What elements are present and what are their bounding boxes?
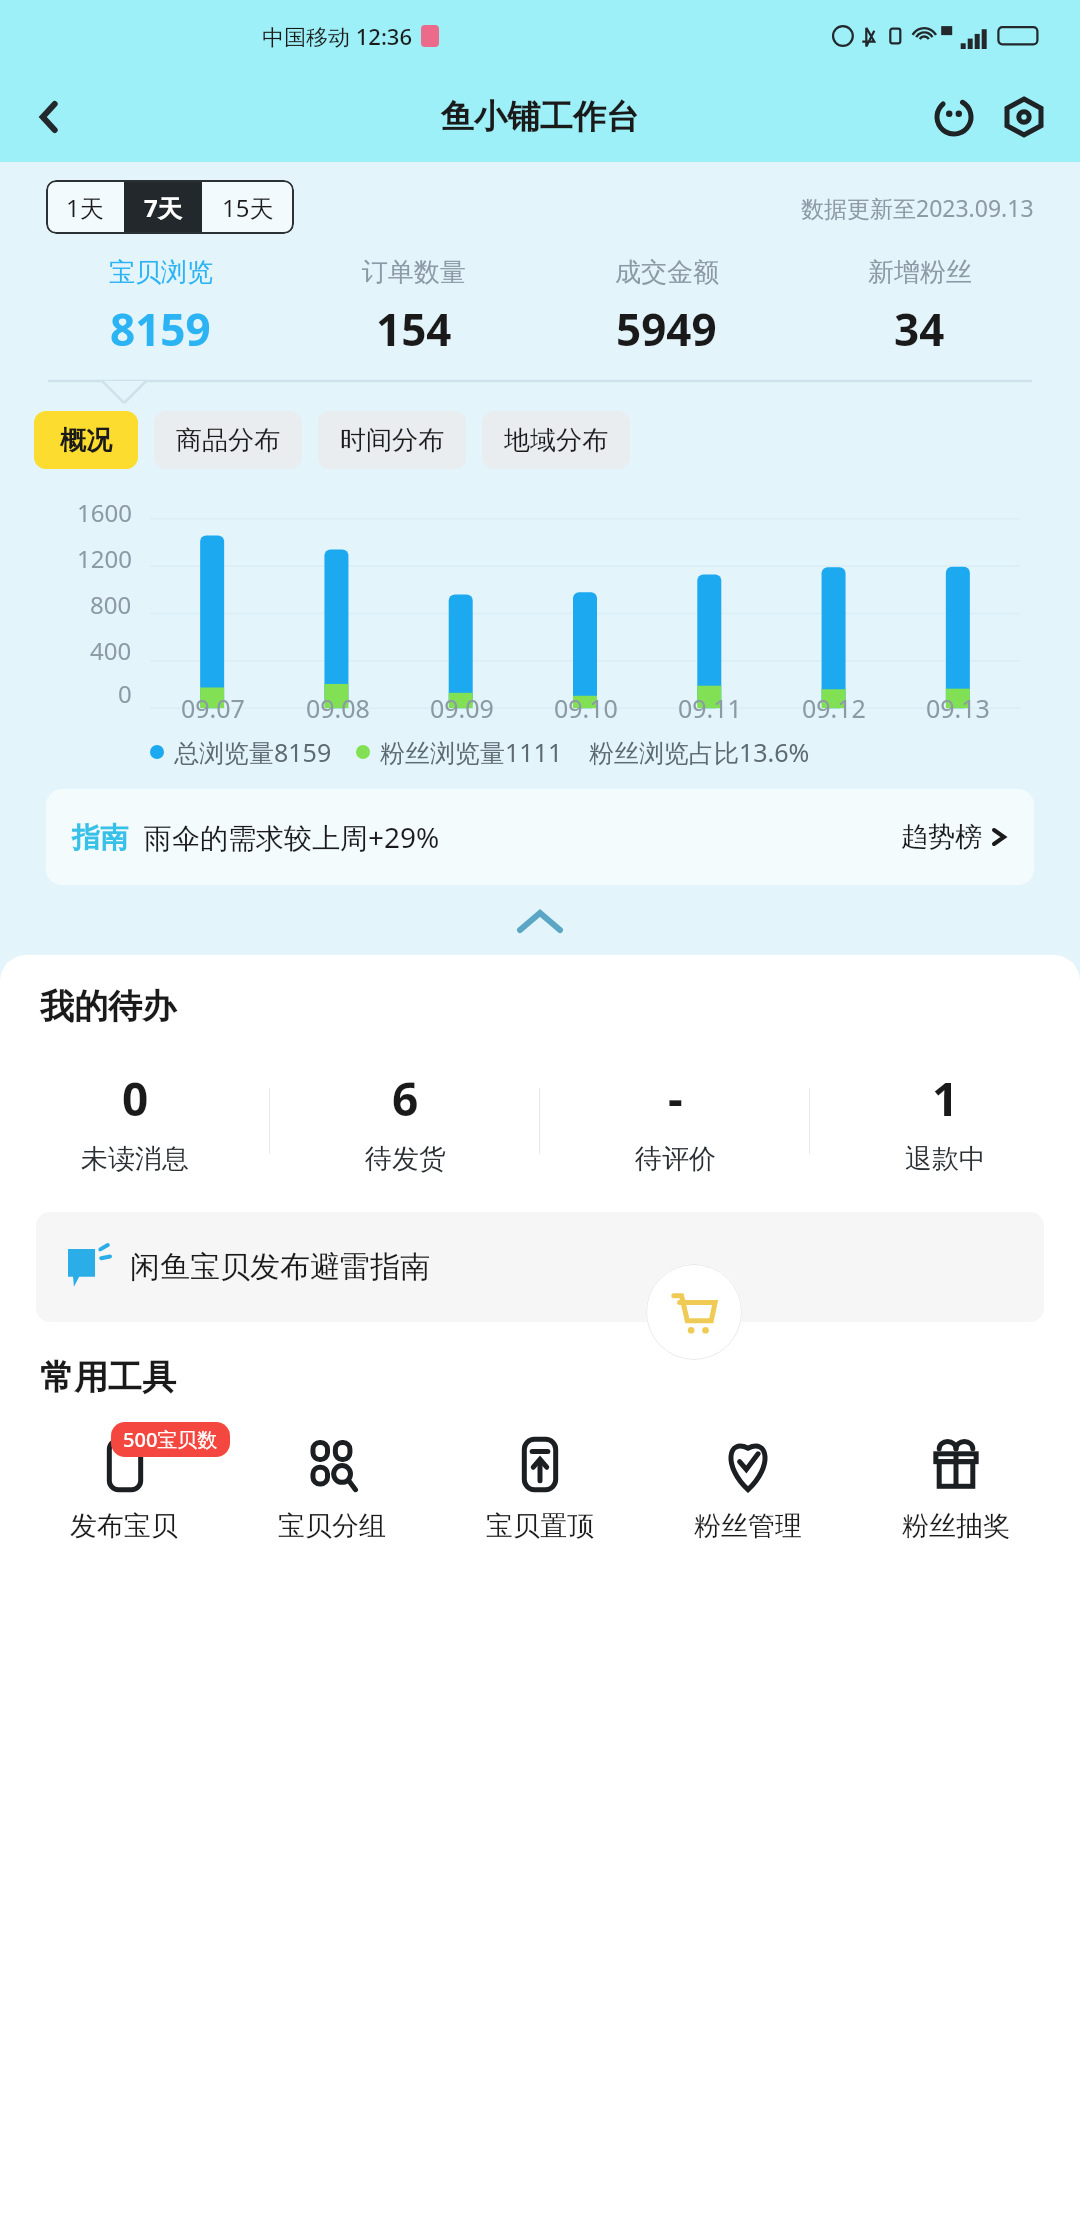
staticText: 粉丝抽奖 <box>902 1509 1010 1543</box>
staticText: 指南 <box>72 820 128 855</box>
staticText: 1天 <box>66 191 104 224</box>
staticText: 1200 <box>77 542 132 575</box>
staticText: 待评价 <box>635 1142 716 1176</box>
staticText: 154 <box>376 299 452 359</box>
staticText: 宝贝置顶 <box>486 1509 594 1543</box>
button[interactable]: 粉丝抽奖 <box>852 1429 1060 1543</box>
staticText: 800 <box>90 588 132 621</box>
staticText: 09.13 <box>926 691 990 725</box>
button[interactable]: 500宝贝数 <box>20 1429 228 1543</box>
button[interactable]: - <box>540 1056 810 1186</box>
staticText: 时间分布 <box>340 424 444 457</box>
staticText: 趋势榜 <box>901 820 982 854</box>
staticText: 新增粉丝 <box>868 256 972 289</box>
button[interactable]: 0 <box>0 1056 270 1186</box>
staticText: 概况 <box>60 424 112 457</box>
button[interactable]: 商品分布 <box>154 411 302 469</box>
button[interactable]: 指南 <box>46 789 1034 885</box>
staticText: 粉丝管理 <box>694 1509 802 1543</box>
staticText: 09.10 <box>554 691 618 725</box>
staticText: 常用工具 <box>40 1356 176 1399</box>
button[interactable]: 闲鱼宝贝发布避雷指南 <box>36 1212 1044 1322</box>
button[interactable]: 宝贝分组 <box>228 1429 436 1543</box>
button[interactable]: 6 <box>270 1056 540 1186</box>
staticText: 宝贝浏览 <box>109 256 213 289</box>
staticText: 5949 <box>616 299 717 359</box>
staticText: 7天 <box>144 191 182 224</box>
button[interactable]: Settings <box>996 89 1052 145</box>
staticText: 雨伞的需求较上周+29% <box>144 818 440 856</box>
button[interactable]: 1 <box>810 1056 1080 1186</box>
button[interactable]: 成交金额 <box>540 256 793 359</box>
button[interactable]: 1天 <box>46 180 124 234</box>
staticText: 8159 <box>110 299 211 359</box>
staticText: 0 <box>118 677 132 710</box>
staticText: 待发货 <box>365 1142 446 1176</box>
staticText: 宝贝分组 <box>278 1509 386 1543</box>
button[interactable]: 7天 <box>124 180 202 234</box>
staticText: 未读消息 <box>81 1142 189 1176</box>
button[interactable]: 概况 <box>34 411 138 469</box>
button[interactable]: Cart <box>646 1264 742 1360</box>
staticText: 09.11 <box>678 691 742 725</box>
button[interactable]: 宝贝浏览 <box>34 256 287 359</box>
staticText: 我的待办 <box>40 985 176 1028</box>
staticText: 鱼小铺工作台 <box>441 96 639 138</box>
button[interactable]: 粉丝管理 <box>644 1429 852 1543</box>
staticText: 34 <box>894 299 945 359</box>
staticText: 09.08 <box>306 691 370 725</box>
button[interactable]: 15天 <box>202 180 294 234</box>
button[interactable]: 订单数量 <box>287 256 540 359</box>
staticText: 成交金额 <box>615 256 719 289</box>
staticText: 商品分布 <box>176 424 280 457</box>
staticText: 粉丝浏览量1111 <box>380 735 563 769</box>
staticText: - <box>668 1067 683 1130</box>
staticText: 1 <box>932 1067 959 1130</box>
staticText: 09.07 <box>181 691 245 725</box>
staticText: 发布宝贝 <box>70 1509 178 1543</box>
staticText: 粉丝浏览占比13.6% <box>589 735 810 769</box>
staticText: 闲鱼宝贝发布避雷指南 <box>130 1248 430 1286</box>
staticText: 09.12 <box>802 691 866 725</box>
staticText: 0 <box>122 1067 149 1130</box>
button[interactable]: Customer service <box>926 89 982 145</box>
button[interactable]: 时间分布 <box>318 411 466 469</box>
staticText: 订单数量 <box>362 256 466 289</box>
button[interactable]: 地域分布 <box>482 411 630 469</box>
staticText: 1600 <box>77 496 132 529</box>
staticText: 退款中 <box>905 1142 986 1176</box>
button[interactable]: 宝贝置顶 <box>436 1429 644 1543</box>
staticText: 500宝贝数 <box>123 1426 218 1453</box>
staticText: 400 <box>90 634 132 667</box>
button[interactable]: 新增粉丝 <box>793 256 1046 359</box>
staticText: 地域分布 <box>504 424 608 457</box>
staticText: 15天 <box>222 191 274 224</box>
staticText: 中国移动 12:36 <box>262 21 413 51</box>
staticText: 数据更新至2023.09.13 <box>801 192 1034 223</box>
button[interactable]: Back <box>22 89 78 145</box>
staticText: 总浏览量8159 <box>174 735 332 769</box>
button[interactable]: Collapse <box>0 899 1080 943</box>
staticText: 6 <box>392 1067 419 1130</box>
staticText: 09.09 <box>430 691 494 725</box>
